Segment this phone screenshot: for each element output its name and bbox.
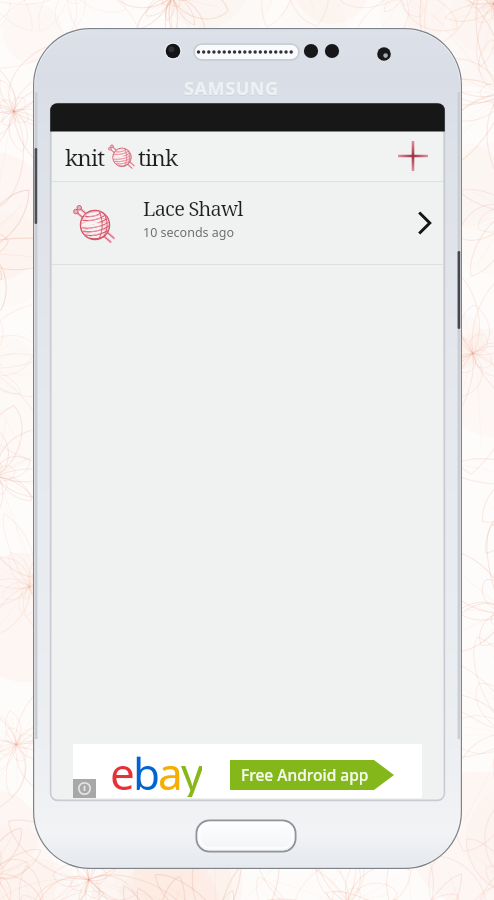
staticText: SAMSUNG <box>184 77 279 102</box>
button[interactable]: Lace Shawl <box>52 182 443 264</box>
staticText: Free Android app <box>241 764 369 785</box>
staticText: 10 seconds ago <box>143 224 235 241</box>
staticText: Lace Shawl <box>143 195 243 222</box>
staticText: a <box>158 743 181 797</box>
button[interactable]: e <box>73 744 422 798</box>
staticText: SAMSUNG <box>184 76 279 101</box>
button[interactable]: Add project <box>391 134 435 178</box>
staticText: b <box>133 743 158 797</box>
staticText: knit <box>65 142 105 173</box>
staticText: y <box>181 743 202 797</box>
staticText: e <box>110 743 133 797</box>
staticText: tink <box>138 142 178 173</box>
